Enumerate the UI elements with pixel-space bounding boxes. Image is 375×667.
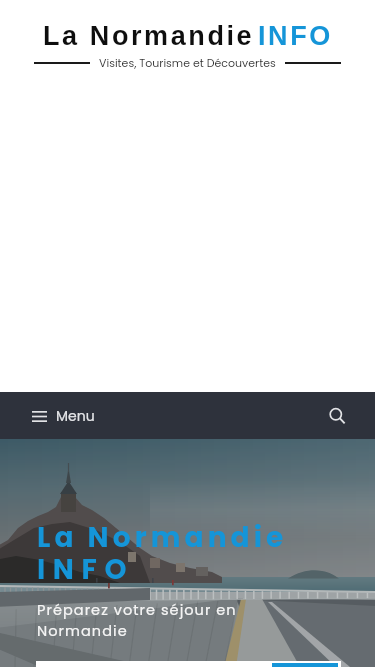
staticText: Visites, Tourisme et Découvertes [99, 55, 276, 70]
staticText: Préparez votre séjour en Normandie [37, 600, 237, 641]
button[interactable]: Menu [32, 406, 95, 426]
staticText: La Normandie [37, 518, 288, 557]
staticText: Menu [56, 406, 95, 426]
button[interactable]: Search [322, 401, 352, 431]
staticText: INFO [258, 21, 333, 51]
staticText: INFO [37, 550, 135, 589]
staticText: La Normandie [43, 21, 255, 51]
